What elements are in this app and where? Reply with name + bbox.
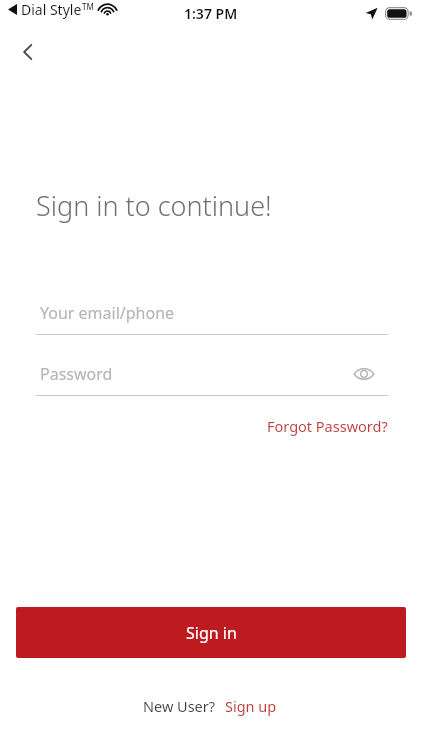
button[interactable]: Password xyxy=(36,357,388,397)
staticText: Forgot Password? xyxy=(267,416,388,436)
button[interactable]: Forgot Password? xyxy=(263,412,392,440)
staticText: TM xyxy=(82,1,94,12)
button[interactable]: Sign in xyxy=(16,607,406,658)
staticText: New User? xyxy=(143,696,216,716)
button[interactable]: Your email/phone xyxy=(36,296,388,336)
staticText: Sign in to continue! xyxy=(36,187,272,224)
button[interactable]: Show password xyxy=(348,358,380,390)
staticText: 1:37 PM xyxy=(184,4,238,23)
staticText: Password xyxy=(40,363,113,385)
button[interactable]: Sign up xyxy=(222,692,280,720)
staticText: Dial Style xyxy=(21,0,82,19)
staticText: Sign in xyxy=(186,622,237,644)
button[interactable]: Back xyxy=(8,32,48,72)
staticText: Your email/phone xyxy=(40,302,175,324)
staticText: Sign up xyxy=(225,696,277,716)
